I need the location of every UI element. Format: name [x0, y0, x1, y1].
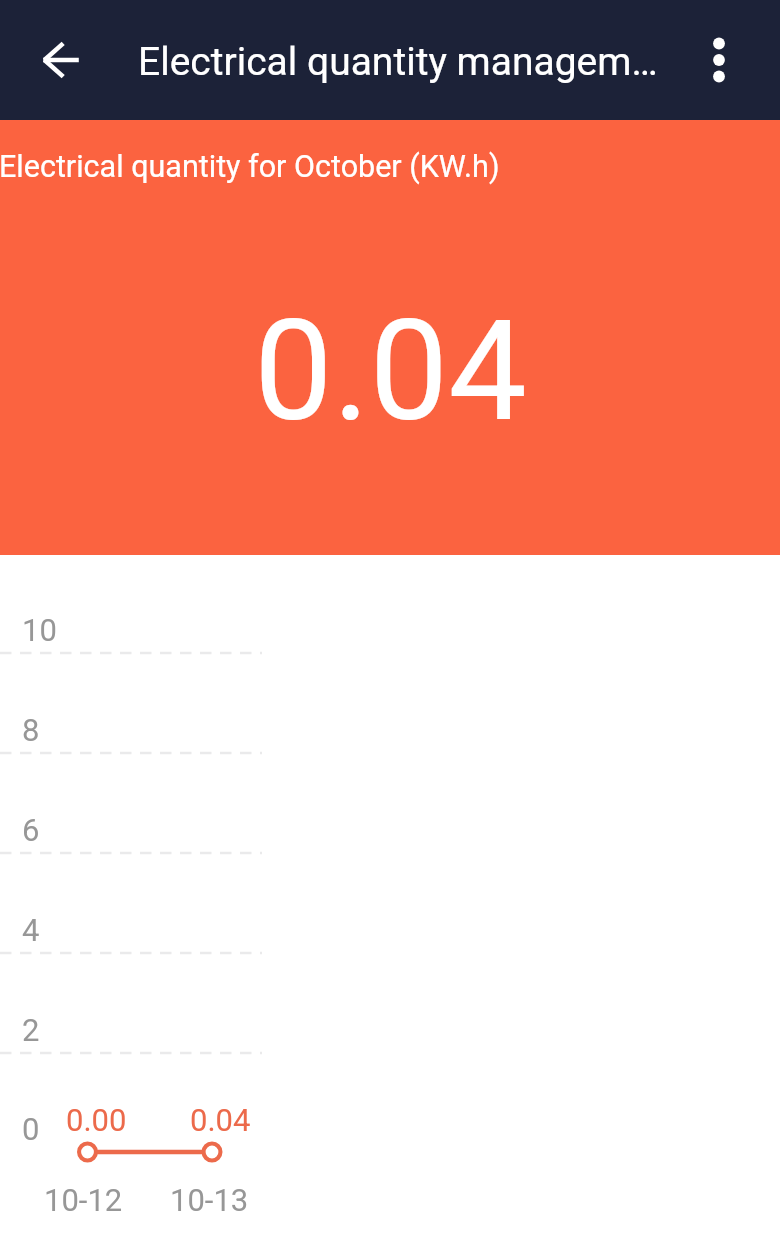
staticText: 0	[22, 1111, 40, 1147]
staticText: 0.04	[190, 1102, 251, 1138]
staticText: 2	[22, 1012, 40, 1048]
staticText: Electrical quantity managem…	[138, 39, 658, 85]
staticText: Electrical quantity for October (KW.h)	[0, 149, 500, 185]
staticText: 10-12	[44, 1182, 123, 1218]
staticText: 10	[22, 612, 57, 648]
staticText: 8	[22, 712, 40, 748]
staticText: 10-13	[170, 1182, 249, 1218]
staticText: 6	[22, 812, 40, 848]
staticText: 0.00	[66, 1102, 127, 1138]
staticText: 4	[22, 912, 40, 948]
button[interactable]: More options	[679, 20, 759, 100]
button[interactable]: Back	[20, 20, 100, 100]
staticText: 0.04	[254, 289, 527, 453]
